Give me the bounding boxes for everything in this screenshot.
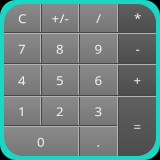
staticText: C bbox=[18, 9, 26, 27]
button[interactable]: 3 bbox=[80, 97, 117, 125]
staticText: 6 bbox=[94, 71, 102, 89]
staticText: - bbox=[135, 40, 139, 57]
button[interactable]: * bbox=[119, 4, 156, 32]
staticText: = bbox=[133, 118, 141, 135]
button[interactable]: 2 bbox=[42, 97, 78, 125]
staticText: +/- bbox=[51, 9, 68, 27]
staticText: 2 bbox=[56, 102, 64, 120]
button[interactable]: 6 bbox=[80, 65, 117, 95]
staticText: * bbox=[134, 9, 141, 27]
button[interactable]: + bbox=[119, 65, 156, 95]
staticText: + bbox=[133, 71, 141, 89]
button[interactable]: C bbox=[4, 4, 40, 32]
button[interactable]: 5 bbox=[42, 65, 78, 95]
button[interactable]: / bbox=[80, 4, 117, 32]
button[interactable]: 8 bbox=[42, 34, 78, 63]
button[interactable]: = bbox=[119, 97, 156, 156]
staticText: 5 bbox=[56, 71, 64, 89]
staticText: 7 bbox=[18, 40, 26, 57]
button[interactable]: 9 bbox=[80, 34, 117, 63]
button[interactable]: . bbox=[80, 127, 117, 156]
button[interactable]: - bbox=[119, 34, 156, 63]
button[interactable]: 1 bbox=[4, 97, 40, 125]
button[interactable]: 7 bbox=[4, 34, 40, 63]
staticText: 3 bbox=[94, 102, 102, 120]
staticText: . bbox=[96, 133, 100, 150]
button[interactable]: 4 bbox=[4, 65, 40, 95]
staticText: 1 bbox=[18, 102, 26, 120]
staticText: 4 bbox=[18, 71, 26, 89]
staticText: 9 bbox=[94, 40, 102, 57]
button[interactable]: +/- bbox=[42, 4, 78, 32]
staticText: / bbox=[96, 9, 101, 27]
button[interactable]: 0 bbox=[4, 127, 78, 156]
staticText: 0 bbox=[37, 133, 45, 150]
staticText: 8 bbox=[56, 40, 64, 57]
